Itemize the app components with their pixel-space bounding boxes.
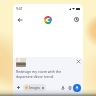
button[interactable]: History <box>72 15 81 24</box>
staticText: Redesign my room with the dopamine décor… <box>16 69 77 79</box>
button[interactable]: Send <box>73 84 81 92</box>
button[interactable]: Attached photo <box>16 58 26 67</box>
button[interactable]: Images <box>23 84 46 91</box>
button[interactable]: Add <box>15 84 22 91</box>
button[interactable]: Back <box>15 15 24 24</box>
button[interactable]: Google Lens <box>66 84 73 91</box>
staticText: Images <box>29 86 41 90</box>
button[interactable]: Voice search <box>59 84 66 91</box>
button[interactable]: Remove attachment <box>75 58 81 64</box>
staticText: 9:41 <box>16 6 23 11</box>
